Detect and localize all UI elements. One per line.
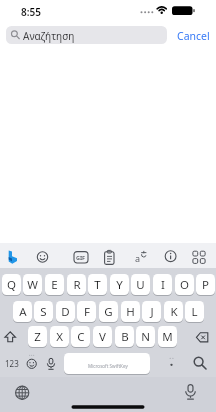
staticText: K: [170, 304, 178, 320]
button[interactable]: [10, 381, 35, 405]
button[interactable]: X: [50, 326, 69, 348]
button[interactable]: R: [67, 274, 86, 296]
button[interactable]: Y: [110, 274, 129, 296]
button[interactable]: A: [13, 301, 32, 323]
button[interactable]: [33, 245, 53, 266]
button[interactable]: [161, 245, 181, 266]
staticText: S: [40, 304, 47, 320]
button[interactable]: [99, 245, 119, 266]
staticText: J: [150, 304, 154, 320]
button[interactable]: [160, 353, 182, 374]
button[interactable]: V: [93, 326, 112, 348]
button[interactable]: [194, 327, 212, 348]
button[interactable]: P: [196, 274, 215, 296]
button[interactable]: E: [45, 274, 64, 296]
staticText: a: [135, 252, 141, 264]
staticText: P: [202, 277, 209, 293]
staticText: C: [77, 329, 85, 345]
button[interactable]: Αναζήτηση: [6, 26, 167, 44]
staticText: G: [104, 304, 113, 320]
staticText: U: [136, 277, 145, 293]
button[interactable]: [64, 353, 150, 375]
staticText: Z: [34, 329, 41, 345]
button[interactable]: [24, 353, 40, 374]
button[interactable]: Cancel: [177, 29, 210, 43]
button[interactable]: J: [142, 301, 161, 323]
staticText: L: [191, 304, 198, 320]
staticText: M: [162, 329, 173, 345]
staticText: H: [126, 304, 135, 320]
staticText: X: [56, 329, 63, 345]
button[interactable]: Q: [2, 274, 21, 296]
staticText: W: [27, 277, 38, 293]
button[interactable]: M: [158, 326, 177, 348]
button[interactable]: N: [136, 326, 155, 348]
button[interactable]: [3, 245, 23, 266]
button[interactable]: K: [164, 301, 183, 323]
staticText: 8:55: [21, 5, 41, 19]
button[interactable]: 123: [2, 353, 22, 374]
button[interactable]: S: [34, 301, 53, 323]
staticText: D: [61, 304, 70, 320]
button[interactable]: U: [131, 274, 150, 296]
staticText: Q: [7, 277, 16, 293]
staticText: Αναζήτηση: [23, 29, 75, 43]
button[interactable]: D: [56, 301, 75, 323]
button[interactable]: [178, 381, 203, 405]
button[interactable]: F: [77, 301, 96, 323]
staticText: T: [94, 277, 101, 293]
button[interactable]: T: [88, 274, 107, 296]
button[interactable]: [188, 353, 210, 374]
button[interactable]: O: [175, 274, 194, 296]
button[interactable]: [131, 245, 151, 266]
button[interactable]: C: [71, 326, 90, 348]
staticText: O: [180, 277, 189, 293]
button[interactable]: [2, 327, 19, 348]
staticText: B: [121, 329, 129, 345]
button[interactable]: Z: [28, 326, 47, 348]
staticText: F: [84, 304, 90, 320]
button[interactable]: L: [185, 301, 204, 323]
button[interactable]: [189, 245, 209, 266]
button[interactable]: B: [115, 326, 134, 348]
button[interactable]: W: [23, 274, 42, 296]
staticText: Microsoft SwiftKey: [88, 363, 128, 369]
staticText: GIF: [76, 254, 86, 261]
staticText: 123: [5, 358, 19, 369]
staticText: N: [141, 329, 150, 345]
staticText: I: [161, 277, 165, 293]
staticText: E: [51, 277, 58, 293]
staticText: V: [99, 329, 106, 345]
staticText: Y: [116, 277, 123, 293]
staticText: A: [19, 304, 27, 320]
button[interactable]: [71, 245, 91, 266]
button[interactable]: H: [121, 301, 140, 323]
button[interactable]: G: [99, 301, 118, 323]
staticText: R: [73, 277, 81, 293]
button[interactable]: I: [153, 274, 172, 296]
button[interactable]: [43, 353, 59, 374]
